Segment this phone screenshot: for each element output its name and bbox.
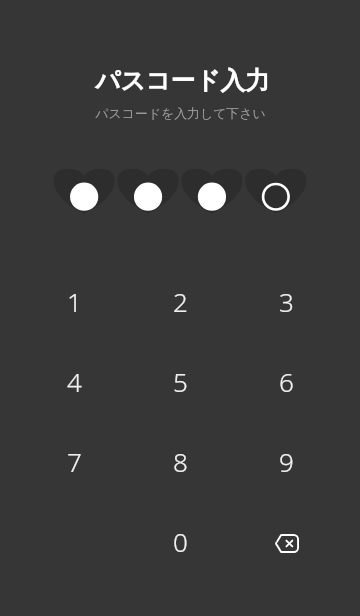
staticText: 9 [279, 444, 294, 479]
staticText: 3 [279, 284, 294, 319]
button[interactable]: Backspace [233, 501, 339, 581]
button[interactable]: 4 [21, 341, 127, 421]
button[interactable]: 2 [127, 261, 233, 341]
button[interactable]: 7 [21, 421, 127, 501]
button[interactable]: 6 [233, 341, 339, 421]
staticText: 8 [173, 444, 188, 479]
button[interactable]: 5 [127, 341, 233, 421]
button[interactable]: 9 [233, 421, 339, 501]
staticText: 6 [279, 364, 294, 399]
staticText: 5 [173, 364, 188, 399]
button[interactable]: 0 [127, 501, 233, 581]
button[interactable]: 8 [127, 421, 233, 501]
staticText: 0 [173, 524, 188, 559]
staticText: パスコード入力 [95, 65, 270, 96]
staticText: 1 [67, 284, 82, 319]
staticText: 7 [67, 444, 82, 479]
staticText: 4 [67, 364, 82, 399]
staticText: 2 [173, 284, 188, 319]
button[interactable]: 1 [21, 261, 127, 341]
button[interactable]: 3 [233, 261, 339, 341]
staticText: パスコードを入力して下さい [95, 106, 266, 122]
